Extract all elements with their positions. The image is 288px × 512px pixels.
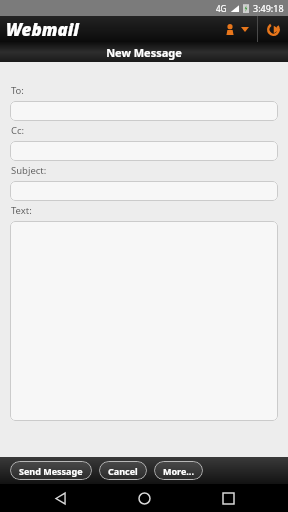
staticText: Subject: <box>11 164 47 177</box>
staticText: Cancel <box>108 465 138 477</box>
button[interactable]: Account menu <box>217 16 257 42</box>
button[interactable]: Back <box>36 484 84 512</box>
button[interactable]: Log out <box>258 16 288 42</box>
button[interactable]: Text input <box>10 181 278 201</box>
button[interactable]: Send Message <box>10 461 92 480</box>
button[interactable]: Text input <box>10 221 278 421</box>
staticText: To: <box>11 84 24 97</box>
button[interactable]: Recent apps <box>204 484 252 512</box>
staticText: Text: <box>11 204 32 217</box>
button[interactable]: Text input <box>10 101 278 121</box>
staticText: More... <box>163 465 194 477</box>
button[interactable]: Home <box>120 484 168 512</box>
button[interactable]: More... <box>154 461 203 480</box>
button[interactable]: Text input <box>10 141 278 161</box>
button[interactable]: Cancel <box>99 461 147 480</box>
staticText: Send Message <box>19 465 83 477</box>
staticText: 4G <box>216 3 227 14</box>
staticText: New Message <box>106 45 182 60</box>
staticText: 3:49:18 <box>253 2 284 14</box>
staticText: Webmail <box>6 18 79 41</box>
staticText: Cc: <box>11 124 25 137</box>
